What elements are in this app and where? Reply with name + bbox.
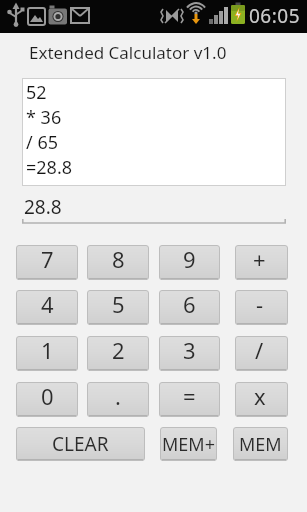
button[interactable]: = — [159, 382, 220, 417]
staticText: 3 — [183, 336, 196, 365]
button[interactable]: x — [235, 382, 288, 417]
button[interactable]: 2 — [87, 336, 149, 371]
button[interactable]: MEM — [233, 427, 288, 461]
staticText: 4 — [41, 290, 54, 319]
staticText: / 65 — [26, 130, 58, 155]
staticText: MEM+ — [162, 432, 215, 457]
button[interactable]: 8 — [87, 245, 149, 280]
staticText: 2 — [112, 336, 125, 365]
staticText: 28.8 — [24, 194, 62, 220]
button[interactable]: 3 — [159, 336, 220, 371]
staticText: * 36 — [26, 105, 62, 130]
button[interactable]: MEM+ — [160, 427, 217, 461]
button[interactable]: CLEAR — [16, 427, 145, 461]
staticText: 0 — [41, 382, 54, 411]
staticText: . — [115, 382, 121, 411]
button[interactable]: - — [235, 290, 288, 325]
button[interactable]: / — [235, 336, 288, 371]
staticText: =28.8 — [26, 155, 73, 180]
button[interactable]: 0 — [16, 382, 78, 417]
button[interactable]: 28.8 — [22, 192, 286, 226]
button[interactable]: 5 — [87, 290, 149, 325]
staticText: 6 — [183, 290, 196, 319]
staticText: 5 — [112, 290, 125, 319]
staticText: MEM — [239, 432, 282, 457]
button[interactable]: 1 — [16, 336, 78, 371]
staticText: = — [183, 382, 196, 411]
staticText: 9 — [183, 245, 196, 274]
button[interactable]: . — [87, 382, 149, 417]
staticText: 8 — [112, 245, 125, 274]
button[interactable]: 9 — [159, 245, 220, 280]
staticText: Extended Calculator v1.0 — [29, 41, 227, 64]
staticText: x — [254, 382, 266, 411]
button[interactable]: 7 — [16, 245, 78, 280]
staticText: + — [253, 245, 266, 274]
staticText: 52 — [26, 80, 47, 105]
staticText: 1 — [41, 336, 54, 365]
staticText: 7 — [41, 245, 54, 274]
button[interactable]: 4 — [16, 290, 78, 325]
staticText: - — [256, 290, 264, 319]
button[interactable]: + — [235, 245, 288, 280]
staticText: 06:05 — [249, 3, 301, 29]
button[interactable]: 52 — [22, 78, 286, 186]
staticText: / — [255, 336, 264, 365]
button[interactable]: 6 — [159, 290, 220, 325]
staticText: CLEAR — [52, 431, 109, 457]
